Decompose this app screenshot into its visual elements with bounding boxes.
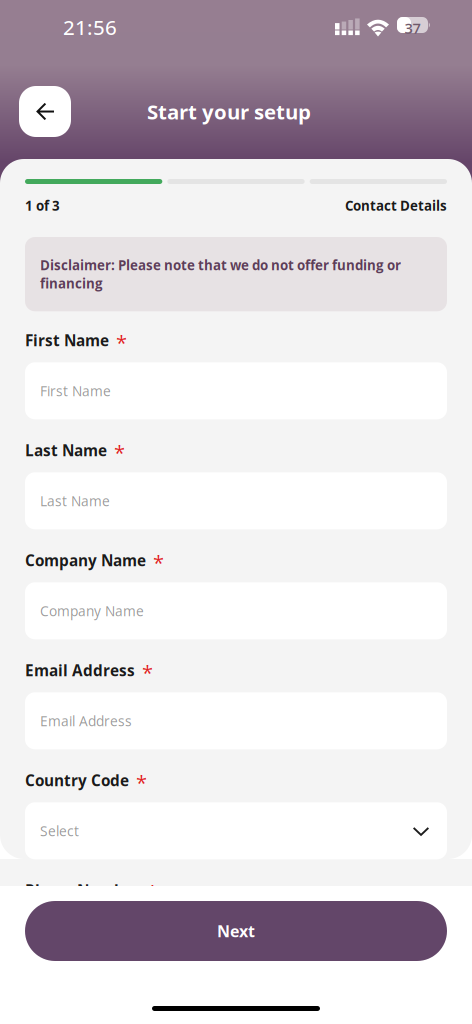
button[interactable]: Select — [25, 802, 447, 859]
staticText: Last Name — [25, 440, 107, 461]
staticText: Disclaimer: Please note that we do not o… — [40, 256, 401, 292]
staticText: Email Address — [25, 660, 135, 681]
staticText: Country Code — [25, 770, 129, 791]
staticText: 21:56 — [63, 13, 117, 41]
staticText: Start your setup — [147, 98, 311, 125]
button[interactable]: Last Name — [25, 472, 447, 529]
staticText: Phone Number — [25, 880, 140, 901]
staticText: * — [142, 659, 153, 686]
staticText: 37 — [404, 18, 420, 38]
button[interactable]: Back — [19, 86, 71, 137]
button[interactable]: Email Address — [25, 692, 447, 749]
staticText: First Name — [25, 330, 109, 351]
staticText: Company Name — [25, 550, 146, 571]
staticText: * — [114, 439, 125, 466]
staticText: First Name — [40, 381, 111, 400]
staticText: * — [153, 549, 164, 576]
staticText: Last Name — [40, 491, 110, 510]
staticText: 1 of 3 — [25, 196, 60, 215]
staticText: Company Name — [40, 601, 144, 620]
staticText: Contact Details — [345, 196, 447, 215]
staticText: Email Address — [40, 711, 132, 730]
staticText: * — [147, 879, 158, 906]
staticText: Next — [217, 920, 255, 942]
staticText: * — [136, 769, 147, 796]
button[interactable]: Company Name — [25, 582, 447, 639]
button[interactable]: Next — [25, 901, 447, 961]
staticText: Select — [40, 821, 79, 840]
button[interactable]: First Name — [25, 362, 447, 419]
staticText: * — [116, 329, 127, 356]
